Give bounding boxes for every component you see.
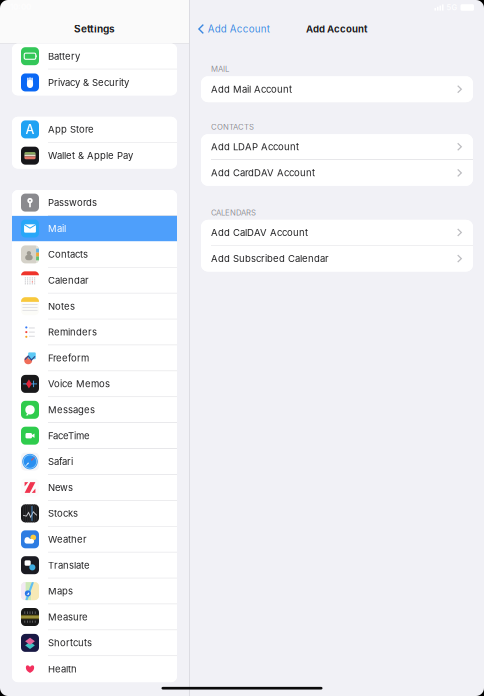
button[interactable]: Safari xyxy=(12,449,177,475)
staticText: Translate xyxy=(48,559,90,571)
staticText: Add CalDAV Account xyxy=(211,227,308,238)
staticText: CALENDARS xyxy=(211,208,256,217)
button[interactable]: Measure xyxy=(12,604,177,630)
button[interactable]: Voice Memos xyxy=(12,371,177,397)
staticText: Contacts xyxy=(48,249,88,260)
button[interactable]: Maps xyxy=(12,578,177,604)
button[interactable]: Privacy & Security xyxy=(12,69,177,95)
button[interactable]: Battery xyxy=(12,44,177,69)
button[interactable]: FaceTime xyxy=(12,423,177,449)
staticText: Add Account xyxy=(208,23,270,35)
staticText: Battery xyxy=(48,50,80,62)
staticText: Voice Memos xyxy=(48,378,110,390)
staticText: Passwords xyxy=(48,197,97,208)
button[interactable]: Notes xyxy=(12,294,177,319)
button[interactable]: Reminders xyxy=(12,319,177,345)
staticText: Add LDAP Account xyxy=(211,141,299,152)
staticText: Settings xyxy=(74,23,115,35)
staticText: Messages xyxy=(48,404,95,416)
button[interactable]: Shortcuts xyxy=(12,630,177,656)
staticText: Health xyxy=(48,663,77,675)
staticText: Privacy & Security xyxy=(48,77,129,88)
staticText: Add Account xyxy=(306,23,368,35)
staticText: MAIL xyxy=(211,64,229,74)
button[interactable]: Add LDAP Account xyxy=(201,134,473,160)
staticText: Reminders xyxy=(48,326,97,338)
staticText: Wallet & Apple Pay xyxy=(48,150,133,161)
staticText: CONTACTS xyxy=(211,122,254,132)
button[interactable]: Contacts xyxy=(12,242,177,268)
button[interactable]: Calendar xyxy=(12,268,177,294)
staticText: Stocks xyxy=(48,508,78,519)
button[interactable]: Translate xyxy=(12,553,177,578)
staticText: Measure xyxy=(48,611,88,623)
staticText: Add Mail Account xyxy=(211,83,292,95)
staticText: Add Subscribed Calendar xyxy=(211,253,329,264)
staticText: A xyxy=(25,122,34,137)
button[interactable]: Add Subscribed Calendar xyxy=(201,246,473,271)
staticText: App Store xyxy=(48,124,94,135)
staticText: News xyxy=(48,482,73,493)
button[interactable]: Stocks xyxy=(12,501,177,527)
button[interactable]: Weather xyxy=(12,527,177,553)
staticText: Notes xyxy=(48,300,75,312)
button[interactable]: Freeform xyxy=(12,345,177,371)
button[interactable]: Mail xyxy=(12,216,177,242)
staticText: Add CardDAV Account xyxy=(211,167,315,179)
button[interactable]: Add Account xyxy=(190,19,270,39)
button[interactable]: News xyxy=(12,475,177,501)
button[interactable]: Passwords xyxy=(12,190,177,216)
button[interactable]: Health xyxy=(12,656,177,682)
button[interactable]: A xyxy=(12,117,177,143)
button[interactable]: Add CardDAV Account xyxy=(201,160,473,186)
staticText: FaceTime xyxy=(48,430,90,441)
button[interactable]: Messages xyxy=(12,397,177,423)
staticText: Maps xyxy=(48,585,73,597)
staticText: Shortcuts xyxy=(48,637,92,649)
button[interactable]: Wallet & Apple Pay xyxy=(12,143,177,169)
button[interactable]: Add CalDAV Account xyxy=(201,220,473,246)
staticText: 5G xyxy=(446,3,457,12)
staticText: Weather xyxy=(48,534,87,545)
button[interactable]: Add Mail Account xyxy=(201,76,473,102)
staticText: Mail xyxy=(48,223,66,234)
staticText: Safari xyxy=(48,456,73,467)
staticText: Calendar xyxy=(48,275,89,286)
staticText: Freeform xyxy=(48,352,89,364)
